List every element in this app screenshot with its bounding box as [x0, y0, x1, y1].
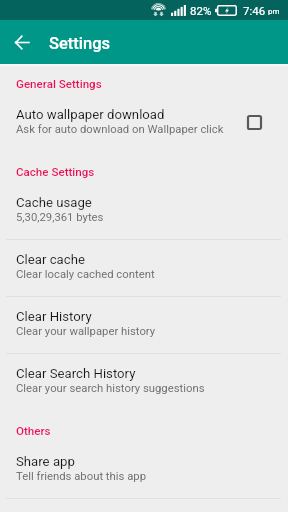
- button[interactable]: Share app: [0, 442, 288, 498]
- staticText: Auto wallpaper download: [16, 107, 165, 122]
- staticText: 7:46: [243, 4, 266, 17]
- staticText: Ask for auto download on Wallpaper click: [16, 123, 224, 136]
- staticText: 5,30,29,361 bytes: [16, 211, 104, 224]
- staticText: pm: [268, 7, 280, 16]
- button[interactable]: Cache usage: [0, 183, 288, 239]
- staticText: Cache usage: [16, 195, 92, 210]
- staticText: Clear your wallpaper history: [16, 325, 156, 338]
- button[interactable]: Back: [6, 26, 38, 58]
- staticText: Clear cache: [16, 252, 85, 267]
- staticText: Cache Settings: [16, 165, 95, 179]
- staticText: General Settings: [16, 77, 102, 91]
- staticText: Others: [16, 424, 51, 438]
- staticText: Clear your search history suggestions: [16, 382, 205, 395]
- staticText: Share app: [16, 454, 75, 469]
- staticText: 82%: [190, 4, 212, 17]
- button[interactable]: Clear Search History: [0, 354, 288, 410]
- button[interactable]: Clear History: [0, 297, 288, 353]
- staticText: Tell friends about this app: [16, 470, 147, 483]
- button[interactable]: Auto wallpaper download: [0, 95, 288, 151]
- staticText: Clear localy cached content: [16, 268, 155, 281]
- staticText: Settings: [49, 34, 111, 53]
- button[interactable]: Clear cache: [0, 240, 288, 296]
- staticText: Clear History: [16, 309, 92, 324]
- staticText: Clear Search History: [16, 366, 136, 381]
- button[interactable]: Auto wallpaper download toggle: [247, 115, 262, 130]
